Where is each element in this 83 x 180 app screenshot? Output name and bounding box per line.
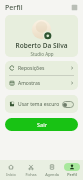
other: Alternar tema escuro [62,101,74,108]
button[interactable]: Perfil [62,163,82,177]
button[interactable]: Configurações [71,4,78,11]
staticText: Início [6,172,16,177]
button[interactable]: Fichas [21,163,41,177]
staticText: Usar tema escuro [18,101,62,108]
button[interactable]: Sair [5,118,78,131]
button[interactable]: Usar tema escuro [5,95,78,113]
button[interactable]: Início [1,163,21,177]
staticText: Roberto Da Silva [15,41,68,50]
button[interactable]: Reposições [5,61,78,75]
staticText: Agenda [45,172,59,177]
button[interactable]: Amostras [5,76,78,90]
staticText: Reposições [18,65,70,72]
button[interactable]: Agenda [42,163,62,177]
staticText: Studio App [30,51,54,57]
staticText: Sair [37,121,47,128]
staticText: Perfil [5,3,23,13]
staticText: Amostras [18,80,70,87]
staticText: Perfil [67,172,77,177]
staticText: Fichas [25,172,37,177]
button[interactable]: Roberto Da Silva [5,15,78,57]
